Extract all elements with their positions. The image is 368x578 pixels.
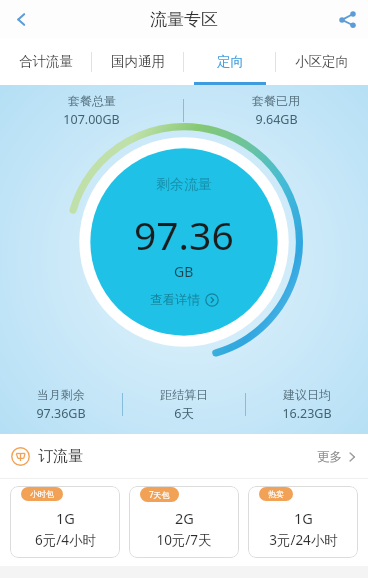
staticText: 合计流量 [19, 53, 73, 70]
button[interactable]: 7天包 [129, 486, 239, 558]
staticText: 订流量 [38, 447, 83, 466]
button[interactable]: 热卖 [248, 486, 358, 558]
staticText: 定向 [217, 53, 244, 70]
button[interactable]: Share [326, 0, 368, 38]
staticText: 2G [175, 508, 194, 528]
staticText: 1G [56, 508, 75, 528]
staticText: 7天包 [149, 489, 170, 500]
staticText: 更多 [317, 449, 342, 465]
button[interactable]: 小区定向 [276, 38, 368, 85]
staticText: 国内通用 [111, 53, 165, 70]
button[interactable]: 查看详情 [150, 292, 219, 308]
button[interactable]: 更多 [317, 449, 358, 465]
staticText: 1G [294, 508, 313, 528]
staticText: 剩余流量 [156, 176, 212, 194]
staticText: 6天 [174, 405, 194, 422]
staticText: 107.00GB [63, 111, 120, 128]
staticText: GB [174, 262, 194, 281]
staticText: 16.23GB [282, 405, 332, 422]
button[interactable]: Back [0, 0, 42, 38]
staticText: 6元/4小时 [35, 531, 96, 549]
button[interactable]: 订流量 [11, 447, 83, 466]
staticText: 3元/24小时 [269, 531, 338, 549]
staticText: 小时包 [30, 489, 54, 499]
staticText: 查看详情 [150, 292, 200, 308]
staticText: 建议日均 [283, 387, 331, 402]
staticText: 套餐已用 [252, 93, 300, 108]
staticText: 10元/7天 [156, 531, 212, 549]
staticText: 流量专区 [150, 9, 218, 30]
staticText: 小区定向 [295, 53, 349, 70]
staticText: 9.64GB [255, 111, 298, 128]
button[interactable]: 合计流量 [0, 38, 92, 85]
staticText: 97.36 [134, 208, 234, 261]
staticText: 热卖 [268, 489, 284, 499]
button[interactable]: 国内通用 [92, 38, 184, 85]
staticText: 套餐总量 [68, 93, 116, 108]
staticText: 当月剩余 [37, 387, 85, 402]
button[interactable]: 定向 [184, 38, 276, 85]
staticText: 距结算日 [160, 387, 208, 402]
button[interactable]: 小时包 [10, 486, 120, 558]
staticText: 97.36GB [36, 405, 86, 422]
